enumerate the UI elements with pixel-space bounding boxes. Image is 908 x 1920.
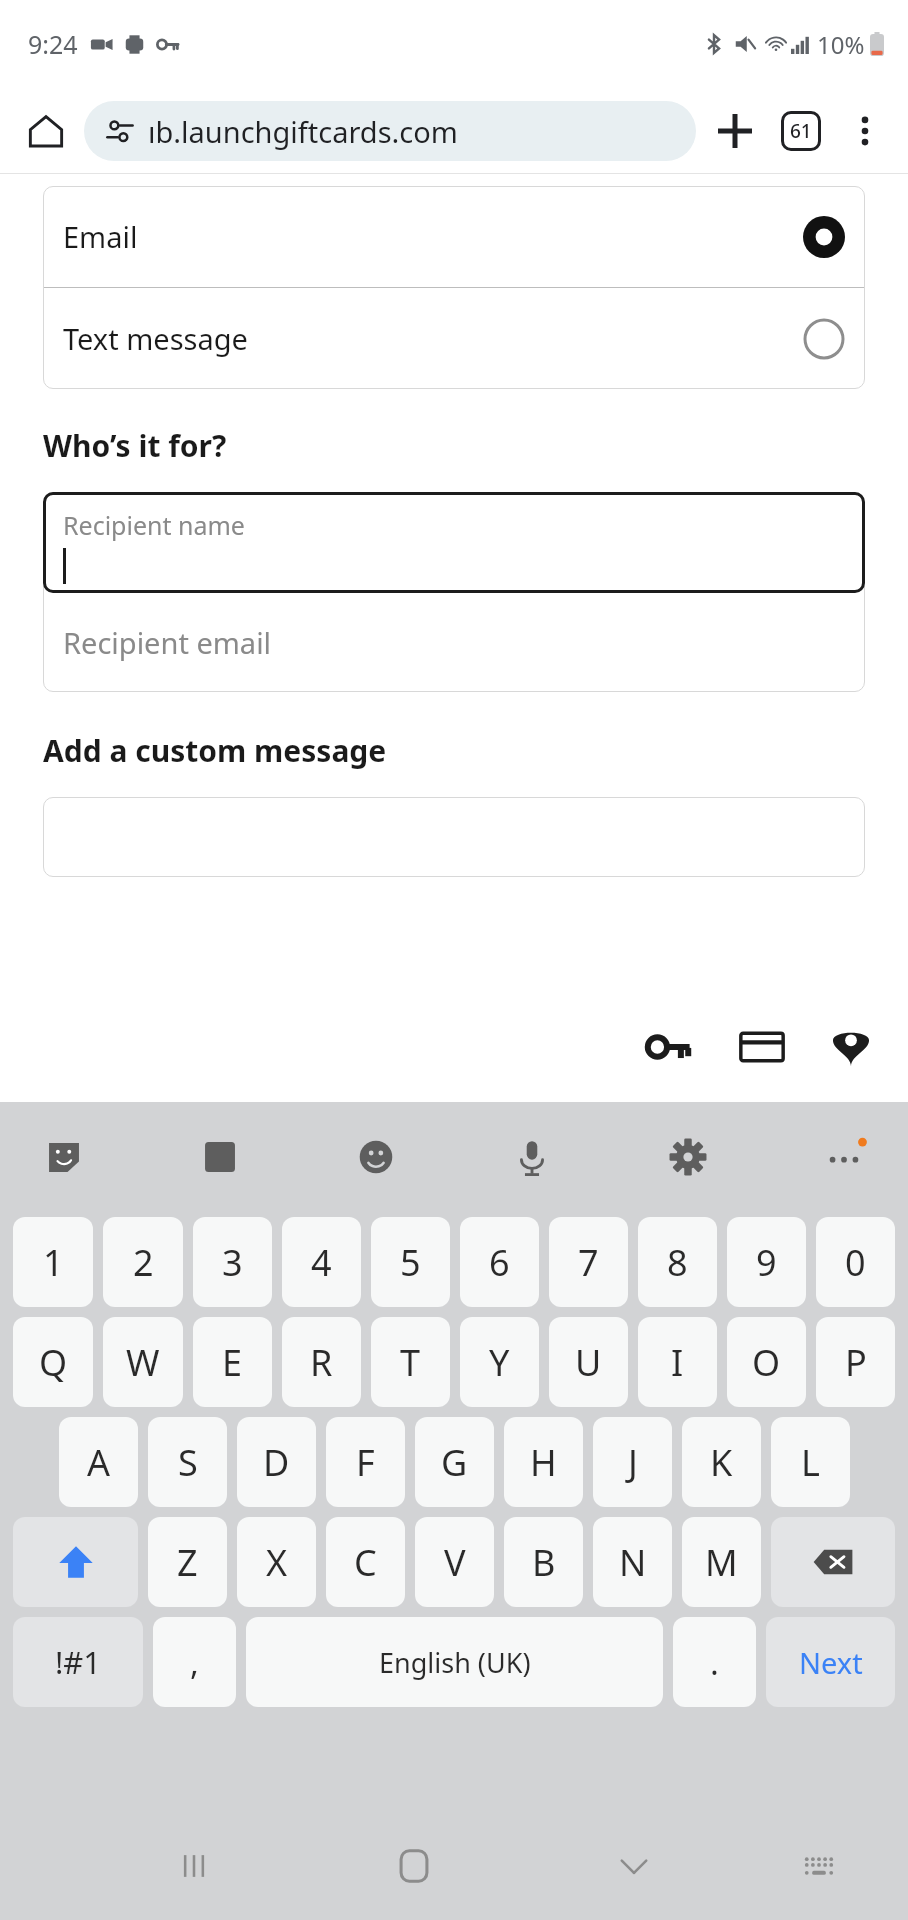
button[interactable]: 7 (549, 1217, 628, 1307)
staticText: D (263, 1438, 290, 1487)
button[interactable]: . (673, 1617, 756, 1707)
button[interactable]: !#1 (13, 1617, 143, 1707)
staticText: L (801, 1438, 820, 1487)
button[interactable]: More options (834, 100, 896, 162)
button[interactable]: V (415, 1517, 494, 1607)
staticText: 0 (845, 1238, 866, 1287)
staticText: 2 (133, 1238, 154, 1287)
button[interactable]: U (549, 1317, 628, 1407)
button[interactable]: ıb.launchgiftcards.com (84, 101, 696, 161)
button[interactable]: M (682, 1517, 761, 1607)
button[interactable]: Shift (13, 1517, 138, 1607)
staticText: O (752, 1338, 781, 1387)
button[interactable]: 4 (282, 1217, 361, 1307)
button[interactable]: F (326, 1417, 405, 1507)
button[interactable]: English (UK) (246, 1617, 663, 1707)
button[interactable]: D (237, 1417, 316, 1507)
button[interactable]: W (103, 1317, 183, 1407)
staticText: Next (799, 1643, 863, 1682)
staticText: Email (63, 217, 138, 256)
button[interactable]: Next (766, 1617, 895, 1707)
button[interactable]: More (812, 1125, 876, 1189)
button[interactable]: Text message (43, 288, 865, 389)
button[interactable]: J (593, 1417, 672, 1507)
button[interactable]: R (282, 1317, 361, 1407)
staticText: W (126, 1338, 160, 1387)
button[interactable]: Home (18, 103, 74, 159)
button[interactable]: Passwords (628, 1007, 708, 1087)
button[interactable]: K (682, 1417, 761, 1507)
button[interactable]: I (638, 1317, 717, 1407)
button[interactable]: B (504, 1517, 583, 1607)
staticText: 5 (400, 1238, 421, 1287)
button[interactable]: 2 (103, 1217, 183, 1307)
staticText: 1 (43, 1238, 64, 1287)
button[interactable]: 9 (727, 1217, 806, 1307)
staticText: I (671, 1338, 684, 1387)
button[interactable]: P (816, 1317, 895, 1407)
button[interactable]: Q (13, 1317, 93, 1407)
button[interactable]: Stickers (32, 1125, 96, 1189)
button[interactable]: Addresses (816, 1012, 886, 1082)
button[interactable]: 0 (816, 1217, 895, 1307)
button[interactable]: Backspace (771, 1517, 895, 1607)
staticText: . (710, 1640, 719, 1685)
button[interactable]: Home (374, 1826, 454, 1906)
staticText: Y (489, 1338, 510, 1387)
staticText: ıb.launchgiftcards.com (148, 112, 458, 151)
button[interactable]: H (504, 1417, 583, 1507)
staticText: English (UK) (379, 1644, 531, 1681)
button[interactable]: C (326, 1517, 405, 1607)
staticText: !#1 (55, 1641, 102, 1683)
button[interactable]: Tabs: 61 (768, 98, 834, 164)
button[interactable]: 3 (193, 1217, 272, 1307)
button[interactable]: 8 (638, 1217, 717, 1307)
button[interactable]: GIF (188, 1125, 252, 1189)
staticText: Add a custom message (43, 730, 387, 771)
staticText: P (845, 1338, 867, 1387)
button[interactable]: L (771, 1417, 850, 1507)
button[interactable]: Switch keyboard (779, 1826, 859, 1906)
staticText: Recipient name (63, 508, 245, 542)
button[interactable]: Email (43, 186, 865, 287)
staticText: 9:24 (28, 27, 78, 61)
button[interactable]: Recents (154, 1826, 234, 1906)
button[interactable]: 1 (13, 1217, 93, 1307)
button[interactable]: G (415, 1417, 494, 1507)
staticText: N (619, 1538, 647, 1587)
button[interactable]: Payment methods (722, 1007, 802, 1087)
button[interactable]: Voice input (500, 1125, 564, 1189)
button[interactable]: Hide keyboard (594, 1826, 674, 1906)
staticText: X (266, 1538, 288, 1587)
staticText: , (190, 1640, 199, 1685)
button[interactable]: 5 (371, 1217, 450, 1307)
staticText: 8 (667, 1238, 688, 1287)
button[interactable]: New tab (702, 98, 768, 164)
button[interactable]: Z (148, 1517, 227, 1607)
button[interactable]: Y (460, 1317, 539, 1407)
button[interactable]: Settings (656, 1125, 720, 1189)
button[interactable]: T (371, 1317, 450, 1407)
button[interactable]: E (193, 1317, 272, 1407)
staticText: B (532, 1538, 556, 1587)
button[interactable]: N (593, 1517, 672, 1607)
button[interactable]: A (59, 1417, 138, 1507)
button[interactable]: , (153, 1617, 236, 1707)
staticText: Q (39, 1338, 68, 1387)
staticText: A (87, 1438, 111, 1487)
button[interactable]: Recipient name (43, 492, 865, 593)
staticText: Who’s it for? (43, 425, 227, 466)
staticText: F (356, 1438, 375, 1487)
button[interactable]: Emoji (344, 1125, 408, 1189)
staticText: K (710, 1438, 733, 1487)
button[interactable]: X (237, 1517, 316, 1607)
staticText: 10% (817, 28, 865, 61)
button[interactable]: S (148, 1417, 227, 1507)
button[interactable]: O (727, 1317, 806, 1407)
staticText: 6 (489, 1238, 510, 1287)
staticText: Z (177, 1538, 198, 1587)
staticText: J (628, 1438, 638, 1487)
staticText: V (444, 1538, 466, 1587)
button[interactable]: 6 (460, 1217, 539, 1307)
staticText: H (530, 1438, 557, 1487)
